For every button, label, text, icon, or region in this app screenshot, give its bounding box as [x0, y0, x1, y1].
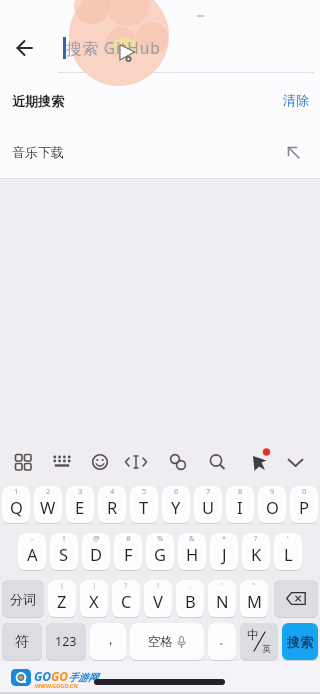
staticText: 123 — [55, 633, 77, 650]
button[interactable]: 中 — [240, 623, 278, 660]
staticText: 音乐下载 — [12, 144, 64, 160]
button[interactable]: 5 — [130, 486, 158, 523]
staticText: 搜索 — [287, 634, 313, 650]
button[interactable]: 6 — [162, 486, 190, 523]
staticText: V — [153, 590, 163, 612]
staticText: @ — [93, 533, 100, 543]
staticText: % — [157, 533, 164, 543]
button[interactable]: 搜索 — [282, 623, 318, 660]
button[interactable]: ? — [112, 580, 140, 617]
staticText: O — [266, 496, 279, 518]
button[interactable]: 2 — [34, 486, 62, 523]
button[interactable]: 。 — [208, 623, 236, 660]
button[interactable]: 搜索 GitHub — [52, 28, 312, 70]
staticText: WWW.GOGO.CN — [35, 682, 78, 689]
staticText: GOGO手游网 — [34, 668, 99, 684]
button[interactable]: 7 — [194, 486, 222, 523]
staticText: ' — [287, 533, 289, 543]
button[interactable] — [46, 446, 78, 478]
button[interactable]: GOGO手游网 — [10, 666, 120, 690]
button[interactable]: ' — [274, 533, 302, 570]
staticText: 8 — [238, 486, 243, 496]
staticText: - — [31, 533, 34, 543]
staticText: K — [251, 543, 262, 565]
button[interactable] — [84, 446, 116, 478]
button[interactable]: ? — [242, 533, 270, 570]
staticText: ' — [221, 580, 223, 590]
button[interactable]: # — [114, 533, 142, 570]
staticText: 3 — [78, 486, 83, 496]
staticText: 0 — [302, 486, 307, 496]
button[interactable]: % — [146, 533, 174, 570]
button[interactable] — [8, 31, 42, 65]
staticText: U — [202, 496, 215, 518]
button[interactable]: - — [18, 533, 46, 570]
button[interactable]: & — [178, 533, 206, 570]
staticText: 分词 — [10, 591, 36, 607]
button[interactable]: . — [176, 580, 204, 617]
staticText: R — [107, 496, 118, 518]
staticText: ( — [61, 580, 64, 590]
button[interactable]: 清除 — [275, 88, 317, 112]
staticText: Z — [57, 590, 67, 612]
staticText: T — [139, 496, 149, 518]
staticText: Q — [10, 496, 23, 518]
button[interactable] — [242, 443, 276, 477]
button[interactable]: 9 — [258, 486, 286, 523]
button[interactable]: 符 — [2, 623, 42, 660]
staticText: * — [222, 533, 227, 543]
staticText: L — [284, 543, 293, 565]
button[interactable]: 1 — [2, 486, 30, 523]
button[interactable] — [162, 446, 194, 478]
button[interactable] — [274, 580, 318, 617]
staticText: 9 — [270, 486, 275, 496]
staticText: 。 — [219, 633, 230, 647]
staticText: 清除 — [283, 92, 309, 108]
button[interactable]: ( — [48, 580, 76, 617]
button[interactable]: * — [210, 533, 238, 570]
button[interactable]: 音乐下载 — [0, 136, 320, 172]
staticText: 7 — [206, 486, 211, 496]
button[interactable] — [120, 446, 152, 478]
staticText: 英 — [262, 643, 271, 654]
staticText: ? — [254, 533, 258, 543]
staticText: F — [124, 543, 133, 565]
staticText: G — [154, 543, 167, 565]
staticText: ! — [63, 533, 66, 543]
button[interactable]: ! — [50, 533, 78, 570]
button[interactable]: 分词 — [2, 580, 44, 617]
button[interactable]: ) — [80, 580, 108, 617]
staticText: Y — [171, 496, 181, 518]
staticText: 2 — [46, 486, 51, 496]
button[interactable]: 8 — [226, 486, 254, 523]
button[interactable]: 123 — [46, 623, 86, 660]
staticText: ? — [124, 580, 128, 590]
button[interactable] — [201, 446, 233, 478]
button[interactable] — [280, 446, 312, 478]
staticText: ) — [93, 580, 96, 590]
staticText: 近期搜索 — [12, 93, 64, 109]
button[interactable]: 空格 — [130, 623, 204, 660]
button[interactable]: 3 — [66, 486, 94, 523]
staticText: P — [299, 496, 309, 518]
staticText: M — [247, 590, 262, 612]
staticText: . — [189, 580, 192, 590]
button[interactable]: 4 — [98, 486, 126, 523]
button[interactable] — [7, 446, 39, 478]
staticText: B — [185, 590, 196, 612]
button[interactable]: ， — [90, 623, 126, 660]
button[interactable]: ' — [208, 580, 236, 617]
staticText: 6 — [174, 486, 179, 496]
staticText: ! — [157, 580, 160, 590]
button[interactable]: " — [240, 580, 268, 617]
staticText: 符 — [15, 633, 29, 651]
staticText: " — [252, 580, 256, 590]
staticText: A — [27, 543, 38, 565]
staticText: 搜索 GitHub — [66, 37, 161, 58]
staticText: 4 — [110, 486, 115, 496]
staticText: D — [90, 543, 103, 565]
button[interactable]: 0 — [290, 486, 318, 523]
staticText: C — [121, 590, 132, 612]
button[interactable]: ! — [144, 580, 172, 617]
button[interactable]: @ — [82, 533, 110, 570]
